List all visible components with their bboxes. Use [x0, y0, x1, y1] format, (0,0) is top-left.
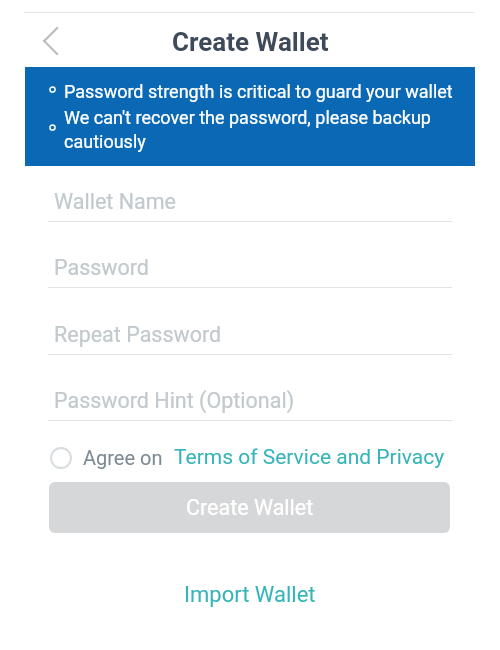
button[interactable]: Agree on — [50, 446, 163, 469]
button[interactable]: Password — [48, 243, 452, 287]
staticText: Repeat Password — [54, 322, 222, 347]
button[interactable]: Create Wallet — [49, 482, 450, 533]
staticText: Create Wallet — [172, 27, 329, 57]
staticText: Password — [54, 255, 149, 280]
button[interactable]: Repeat Password — [48, 310, 452, 354]
staticText: Create Wallet — [186, 495, 314, 520]
button[interactable]: Back — [28, 18, 74, 64]
staticText: Password Hint (Optional) — [54, 388, 295, 413]
button[interactable]: Terms of Service and Privacy — [174, 445, 445, 470]
button[interactable]: Import Wallet — [168, 574, 332, 616]
staticText: Agree on — [83, 446, 163, 469]
button[interactable]: Password Hint (Optional) — [48, 376, 452, 420]
button[interactable]: Wallet Name — [48, 177, 452, 221]
staticText: Wallet Name — [54, 189, 176, 214]
staticText: Password strength is critical to guard y… — [64, 81, 453, 102]
staticText: We can't recover the password, please ba… — [64, 107, 457, 152]
